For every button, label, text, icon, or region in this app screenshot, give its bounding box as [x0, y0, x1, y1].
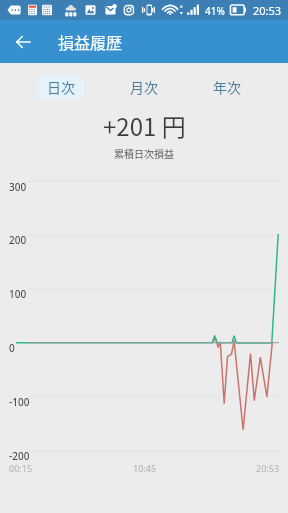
staticText: -200: [9, 449, 30, 463]
staticText: 200: [9, 233, 27, 247]
button[interactable]: 月次: [121, 75, 167, 99]
button[interactable]: 日次: [38, 75, 84, 99]
staticText: 年次: [213, 77, 241, 97]
staticText: +201 円: [103, 108, 186, 143]
staticText: 20:53: [256, 462, 280, 474]
staticText: 300: [9, 180, 27, 194]
button[interactable]: 年次: [204, 75, 250, 99]
staticText: 0: [9, 341, 15, 355]
staticText: 損益履歴: [58, 30, 123, 53]
staticText: 累積日次損益: [114, 146, 174, 160]
staticText: 日次: [47, 77, 75, 97]
staticText: -100: [9, 395, 30, 409]
button[interactable]: Back: [9, 28, 37, 56]
staticText: 100: [9, 287, 27, 301]
staticText: 10:45: [133, 462, 157, 474]
staticText: 00:15: [9, 462, 33, 474]
staticText: 41%: [205, 4, 225, 18]
staticText: 月次: [130, 77, 158, 97]
staticText: 20:53: [253, 3, 282, 18]
